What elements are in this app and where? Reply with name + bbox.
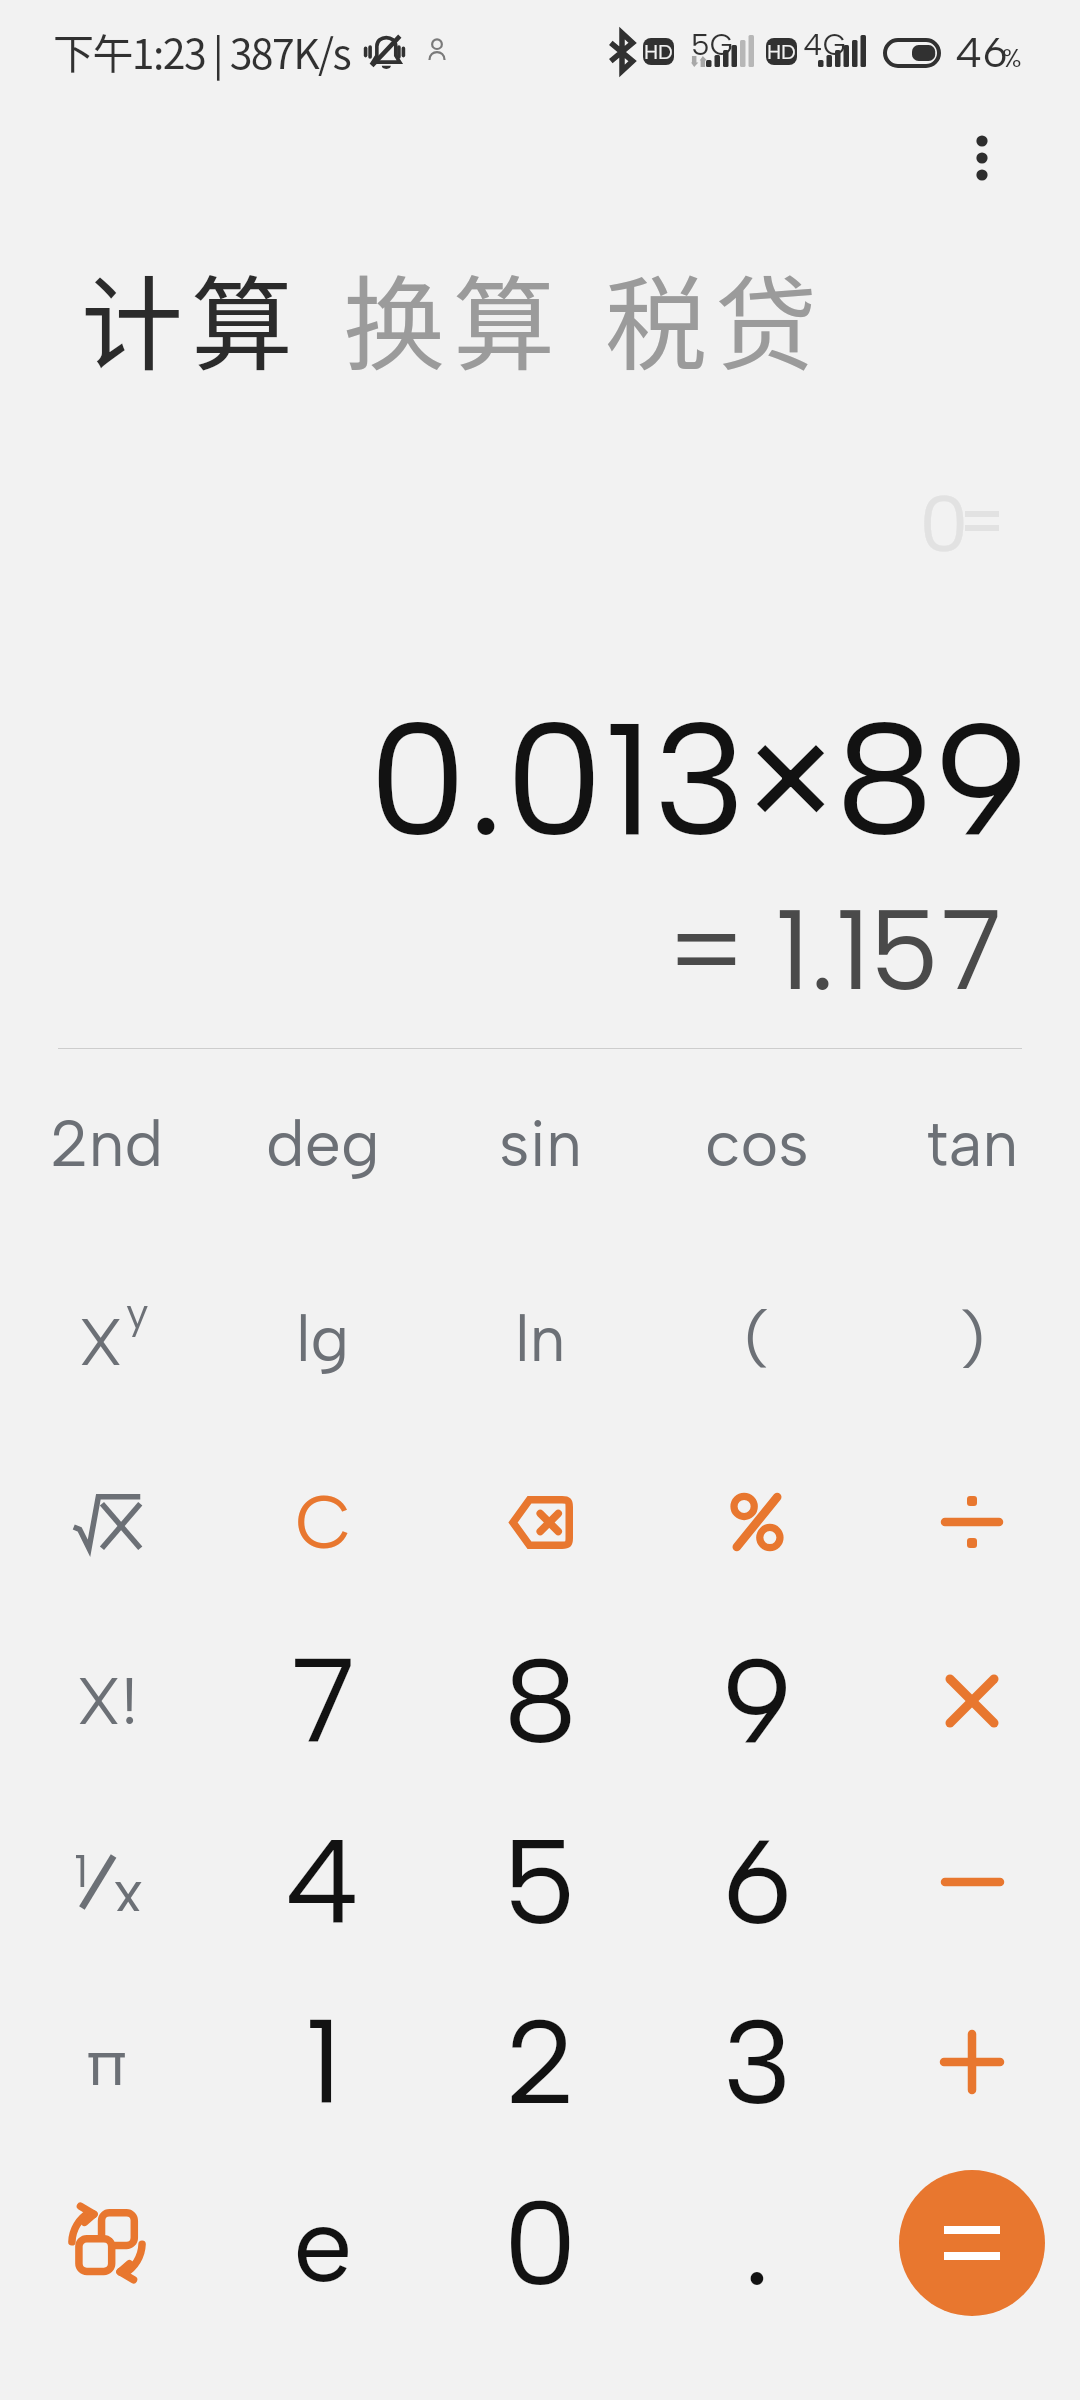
staticText: 0 bbox=[919, 476, 969, 571]
staticText: ) bbox=[959, 1300, 986, 1377]
staticText: 4 bbox=[284, 1811, 362, 1953]
staticText: 3 bbox=[722, 1991, 793, 2133]
button[interactable]: sin bbox=[440, 1057, 640, 1229]
button[interactable]: 5 bbox=[440, 1796, 640, 1968]
staticText: cos bbox=[705, 1105, 809, 1182]
staticText: tan bbox=[926, 1105, 1019, 1182]
staticText: ln bbox=[515, 1300, 566, 1377]
staticText: 0.013×89 bbox=[0, 684, 1029, 874]
staticText: 0 bbox=[503, 2172, 578, 2314]
staticText: 税贷 bbox=[601, 244, 821, 392]
button[interactable]: 计算 bbox=[75, 244, 299, 392]
button[interactable]: Multiply bbox=[872, 1615, 1072, 1787]
button[interactable]: π bbox=[7, 1976, 207, 2148]
staticText: 1 bbox=[74, 1843, 89, 1898]
staticText: y bbox=[126, 1286, 149, 1339]
staticText: sin bbox=[499, 1105, 582, 1182]
button[interactable]: 0 bbox=[440, 2157, 640, 2329]
staticText: C bbox=[295, 1478, 352, 1567]
button[interactable]: Divide bbox=[872, 1436, 1072, 1608]
staticText: 8 bbox=[503, 1630, 578, 1772]
button[interactable]: . bbox=[657, 2157, 857, 2329]
button[interactable]: ln bbox=[440, 1252, 640, 1424]
button[interactable]: X! bbox=[7, 1615, 207, 1787]
staticText: HD bbox=[644, 40, 673, 64]
staticText: 2nd bbox=[50, 1105, 164, 1182]
button[interactable]: Plus bbox=[872, 1976, 1072, 2148]
button[interactable]: 1 bbox=[223, 1976, 423, 2148]
staticText: . bbox=[743, 2172, 771, 2314]
button[interactable]: 4 bbox=[223, 1796, 423, 1968]
button[interactable]: Square root bbox=[7, 1436, 207, 1608]
button[interactable]: Reciprocal bbox=[7, 1796, 207, 1968]
staticText: % bbox=[1002, 42, 1022, 73]
staticText: π bbox=[86, 2024, 128, 2101]
staticText: X! bbox=[76, 1663, 139, 1740]
button[interactable]: 3 bbox=[657, 1976, 857, 2148]
button[interactable]: lg bbox=[223, 1252, 423, 1424]
button[interactable]: cos bbox=[657, 1057, 857, 1229]
button[interactable]: 6 bbox=[657, 1796, 857, 1968]
staticText: = 1.157 bbox=[0, 883, 1002, 1017]
button[interactable]: Unit converter bbox=[7, 2157, 207, 2329]
button[interactable]: 换算 bbox=[337, 244, 561, 392]
staticText: ( bbox=[744, 1300, 771, 1377]
button[interactable]: Backspace bbox=[440, 1436, 640, 1608]
staticText: 5G bbox=[691, 26, 733, 62]
staticText: 46 bbox=[955, 27, 1008, 77]
staticText: lg bbox=[296, 1300, 350, 1377]
button[interactable]: C bbox=[223, 1436, 423, 1608]
button[interactable]: 8 bbox=[440, 1615, 640, 1787]
staticText: 2 bbox=[505, 1991, 576, 2133]
button[interactable]: 2nd bbox=[7, 1057, 207, 1229]
staticText: 6 bbox=[722, 1811, 793, 1953]
staticText: deg bbox=[266, 1105, 380, 1182]
staticText: 下午1:23 | 387K/s bbox=[53, 21, 351, 80]
button[interactable]: More options bbox=[942, 119, 1022, 199]
button[interactable]: 2 bbox=[440, 1976, 640, 2148]
staticText: e bbox=[293, 2180, 353, 2307]
staticText: 5 bbox=[503, 1811, 577, 1953]
button[interactable]: 税贷 bbox=[599, 244, 823, 392]
staticText: x bbox=[113, 1855, 144, 1911]
button[interactable]: ( bbox=[657, 1252, 857, 1424]
staticText: HD bbox=[767, 40, 796, 64]
staticText: 4G bbox=[803, 26, 846, 62]
staticText: X bbox=[78, 1304, 124, 1381]
button[interactable]: ) bbox=[872, 1252, 1072, 1424]
button[interactable]: X bbox=[7, 1252, 207, 1424]
staticText: 计算 bbox=[77, 244, 297, 392]
staticText: 换算 bbox=[339, 244, 559, 392]
staticText: 1 bbox=[305, 1991, 342, 2133]
button[interactable]: deg bbox=[223, 1057, 423, 1229]
button[interactable]: e bbox=[223, 2157, 423, 2329]
button[interactable]: Equals bbox=[899, 2170, 1045, 2316]
button[interactable]: 9 bbox=[657, 1615, 857, 1787]
staticText: 9 bbox=[722, 1630, 793, 1772]
button[interactable]: Percent bbox=[657, 1436, 857, 1608]
staticText: 7 bbox=[290, 1630, 356, 1772]
button[interactable]: tan bbox=[872, 1057, 1072, 1229]
button[interactable]: Minus bbox=[872, 1796, 1072, 1968]
button[interactable]: 7 bbox=[223, 1615, 423, 1787]
